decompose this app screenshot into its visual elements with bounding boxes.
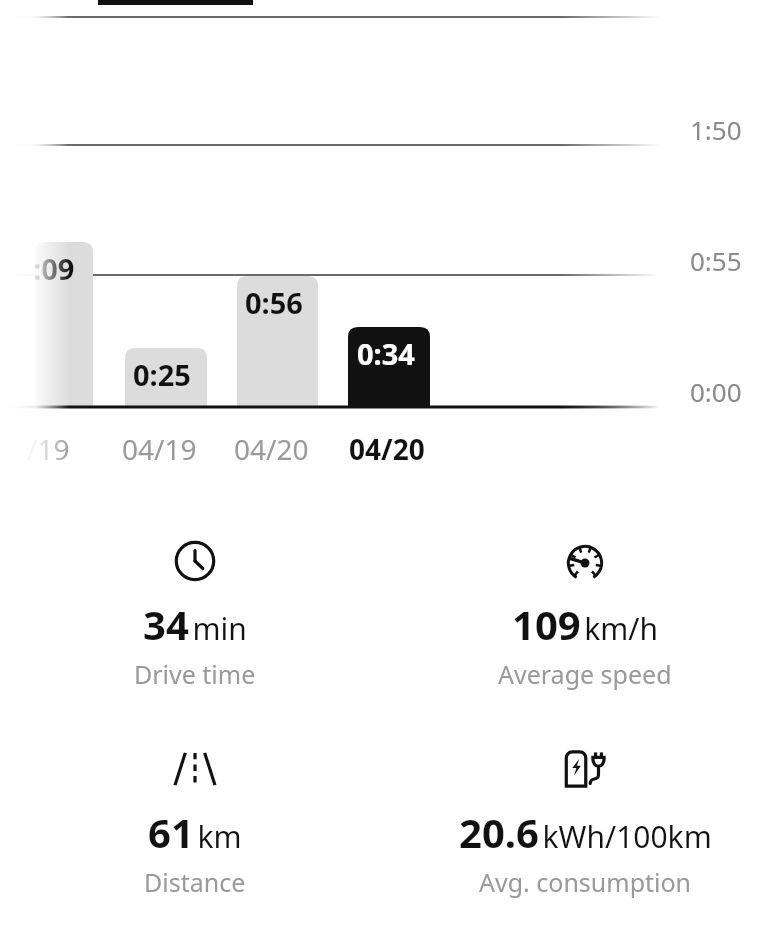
button[interactable]: 04/20 [349, 430, 425, 468]
staticText: 04/20 [234, 430, 309, 468]
staticText: 0:34 [357, 334, 415, 373]
staticText: Distance [144, 865, 246, 899]
staticText: 04/19 [122, 430, 197, 468]
button[interactable]: /19 [27, 430, 70, 468]
staticText: 0:25 [133, 355, 191, 394]
other: Average speed [559, 535, 611, 587]
staticText: 0:55 [690, 243, 742, 278]
other: Distance [169, 743, 221, 795]
other: Average consumption [559, 743, 611, 795]
button[interactable]: Average consumption [390, 743, 780, 899]
staticText: /19 [27, 430, 70, 468]
staticText: 34 min [143, 597, 247, 651]
button[interactable]: Average speed [390, 535, 780, 691]
staticText: 1:50 [690, 112, 742, 147]
staticText: Drive time [134, 657, 256, 691]
staticText: Average speed [498, 657, 672, 691]
staticText: 61 km [148, 805, 242, 859]
button[interactable]: Distance [0, 743, 390, 899]
staticText: 0:00 [690, 374, 742, 409]
button[interactable]: Drive time [0, 535, 390, 691]
staticText: Avg. consumption [479, 865, 692, 899]
staticText: 04/20 [349, 430, 425, 468]
staticText: 20.6 kWh/100km [459, 805, 712, 859]
button[interactable]: 04/20 [234, 430, 309, 468]
staticText: 0:56 [245, 283, 303, 322]
staticText: 109 km/h [512, 597, 659, 651]
staticText: :09 [33, 249, 75, 288]
other: Drive time [169, 535, 221, 587]
button[interactable]: 04/19 [122, 430, 197, 468]
